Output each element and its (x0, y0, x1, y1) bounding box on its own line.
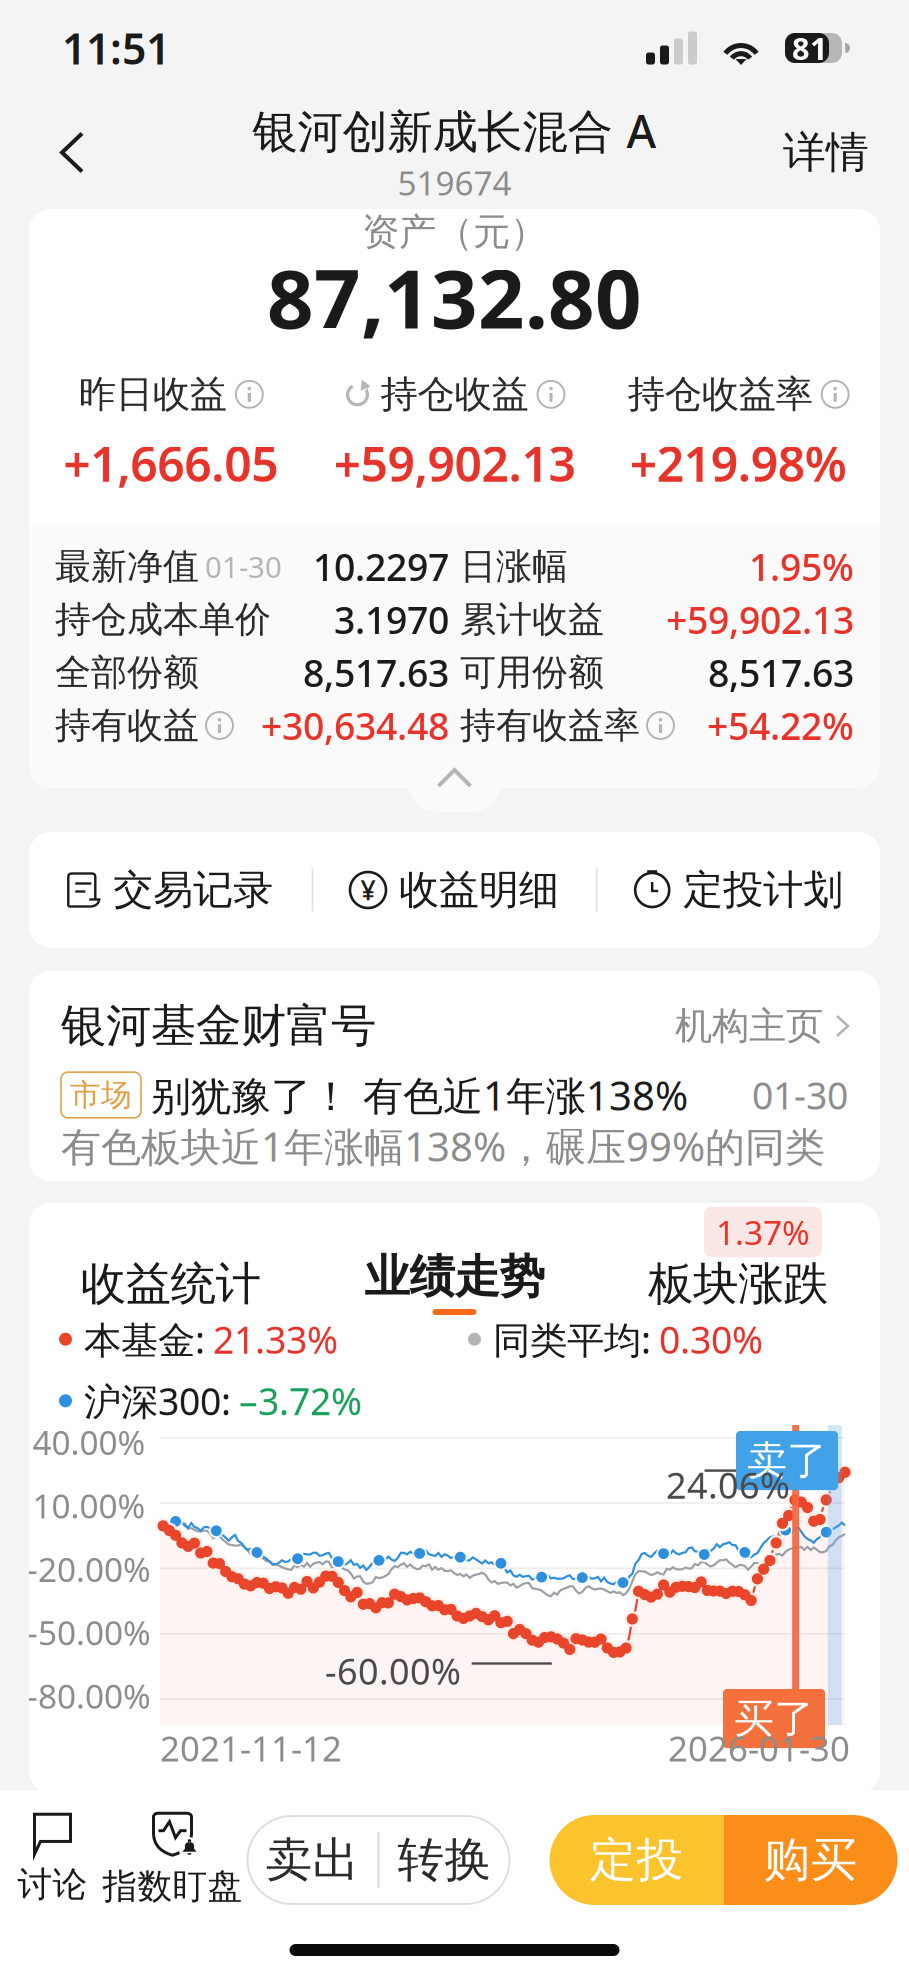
staticText: 全部份额 (55, 650, 199, 695)
staticText: 519674 (397, 160, 511, 205)
staticText: +59,902.13 (333, 431, 575, 495)
staticText: 2021-11-12 (160, 1725, 342, 1771)
staticText: -50.00% (27, 1610, 151, 1655)
staticText: 沪深300: (84, 1376, 231, 1426)
staticText: 昨日收益 (79, 371, 227, 417)
button[interactable]: 定投 (549, 1815, 723, 1905)
staticText: 交易记录 (113, 865, 273, 914)
button[interactable]: 板块涨跌 (596, 1253, 880, 1315)
staticText: -60.00% (325, 1647, 461, 1695)
button[interactable]: 购买 (723, 1815, 897, 1905)
staticText: 21.33% (213, 1314, 338, 1364)
button[interactable]: ¥ (313, 832, 596, 948)
staticText: 板块涨跌 (648, 1256, 828, 1312)
staticText: 40.00% (32, 1420, 145, 1464)
staticText: 业绩走势 (364, 1249, 544, 1305)
button[interactable]: 业绩走势 (313, 1253, 596, 1315)
staticText: 定投计划 (683, 865, 843, 914)
staticText: 收益统计 (81, 1256, 261, 1312)
staticText: 87,132.80 (267, 243, 642, 351)
staticText: 10.2297 (313, 542, 449, 591)
staticText: 市场 (70, 1076, 132, 1114)
staticText: 24.06% (666, 1461, 790, 1509)
staticText: -80.00% (27, 1674, 151, 1718)
staticText: 持有收益 (55, 703, 199, 748)
button[interactable]: 定投计划 (597, 832, 880, 948)
staticText: 详情 (783, 126, 869, 179)
staticText: 10.00% (32, 1483, 145, 1528)
staticText: 最新净值 (55, 544, 199, 589)
button[interactable]: 卖出 (247, 1816, 378, 1904)
staticText: 定投 (589, 1831, 683, 1889)
staticText: 8,517.63 (708, 648, 854, 697)
staticText: 2026-01-30 (668, 1725, 850, 1771)
staticText: 指数盯盘 (102, 1865, 242, 1908)
staticText: 1.37% (716, 1210, 810, 1254)
staticText: 银河创新成长混合 A (252, 100, 656, 160)
staticText: +54.22% (707, 701, 854, 750)
staticText: 0.30% (659, 1314, 763, 1364)
staticText: 累计收益 (460, 597, 604, 642)
staticText: 有色板块近1年涨幅138%，碾压99%的同类 (61, 1119, 825, 1172)
staticText: 81 (792, 28, 828, 68)
staticText: 讨论 (17, 1863, 87, 1906)
staticText: 持有收益率 (460, 703, 640, 748)
staticText: 卖出 (266, 1831, 360, 1889)
staticText: 别犹豫了！ 有色近1年涨138% (151, 1068, 688, 1121)
staticText: +219.98% (630, 431, 847, 495)
staticText: 银河基金财富号 (61, 998, 376, 1054)
staticText: 卖了 (747, 1436, 827, 1485)
staticText: 可用份额 (460, 650, 604, 695)
staticText: ¥ (360, 872, 375, 908)
staticText: +30,634.48 (261, 701, 449, 750)
button[interactable]: 详情 (767, 106, 885, 199)
staticText: +59,902.13 (666, 595, 854, 644)
staticText: 收益明细 (399, 865, 559, 914)
button[interactable]: 机构主页 (675, 1003, 848, 1049)
staticText: 购买 (763, 1831, 857, 1889)
button[interactable]: 交易记录 (29, 832, 312, 948)
staticText: –3.72% (239, 1376, 362, 1426)
staticText: 3.1970 (334, 595, 449, 644)
staticText: 日涨幅 (460, 544, 568, 589)
staticText: +1,666.05 (63, 431, 278, 495)
button[interactable]: Back (36, 111, 108, 193)
staticText: 本基金: (84, 1314, 205, 1364)
staticText: 8,517.63 (303, 648, 449, 697)
staticText: 买了 (734, 1694, 814, 1743)
staticText: 机构主页 (675, 1003, 823, 1049)
staticText: 转换 (397, 1831, 491, 1889)
button[interactable]: 市场 (61, 1055, 848, 1171)
staticText: 持仓成本单价 (55, 597, 271, 642)
staticText: 1.95% (749, 542, 854, 591)
button[interactable]: 指数盯盘 (101, 1805, 243, 1915)
staticText: -20.00% (27, 1547, 151, 1591)
staticText: 持仓收益 (380, 371, 528, 417)
staticText: 11:51 (62, 20, 170, 76)
staticText: 资产（元） (362, 209, 547, 255)
staticText: 01-30 (752, 1070, 848, 1120)
staticText: 01-30 (205, 547, 282, 586)
button[interactable]: 讨论 (3, 1805, 101, 1915)
staticText: 同类平均: (493, 1314, 651, 1364)
button[interactable]: 转换 (379, 1816, 509, 1904)
button[interactable]: 收益统计 (29, 1253, 313, 1315)
button[interactable]: Collapse (408, 756, 500, 812)
staticText: 持仓收益率 (628, 371, 813, 417)
